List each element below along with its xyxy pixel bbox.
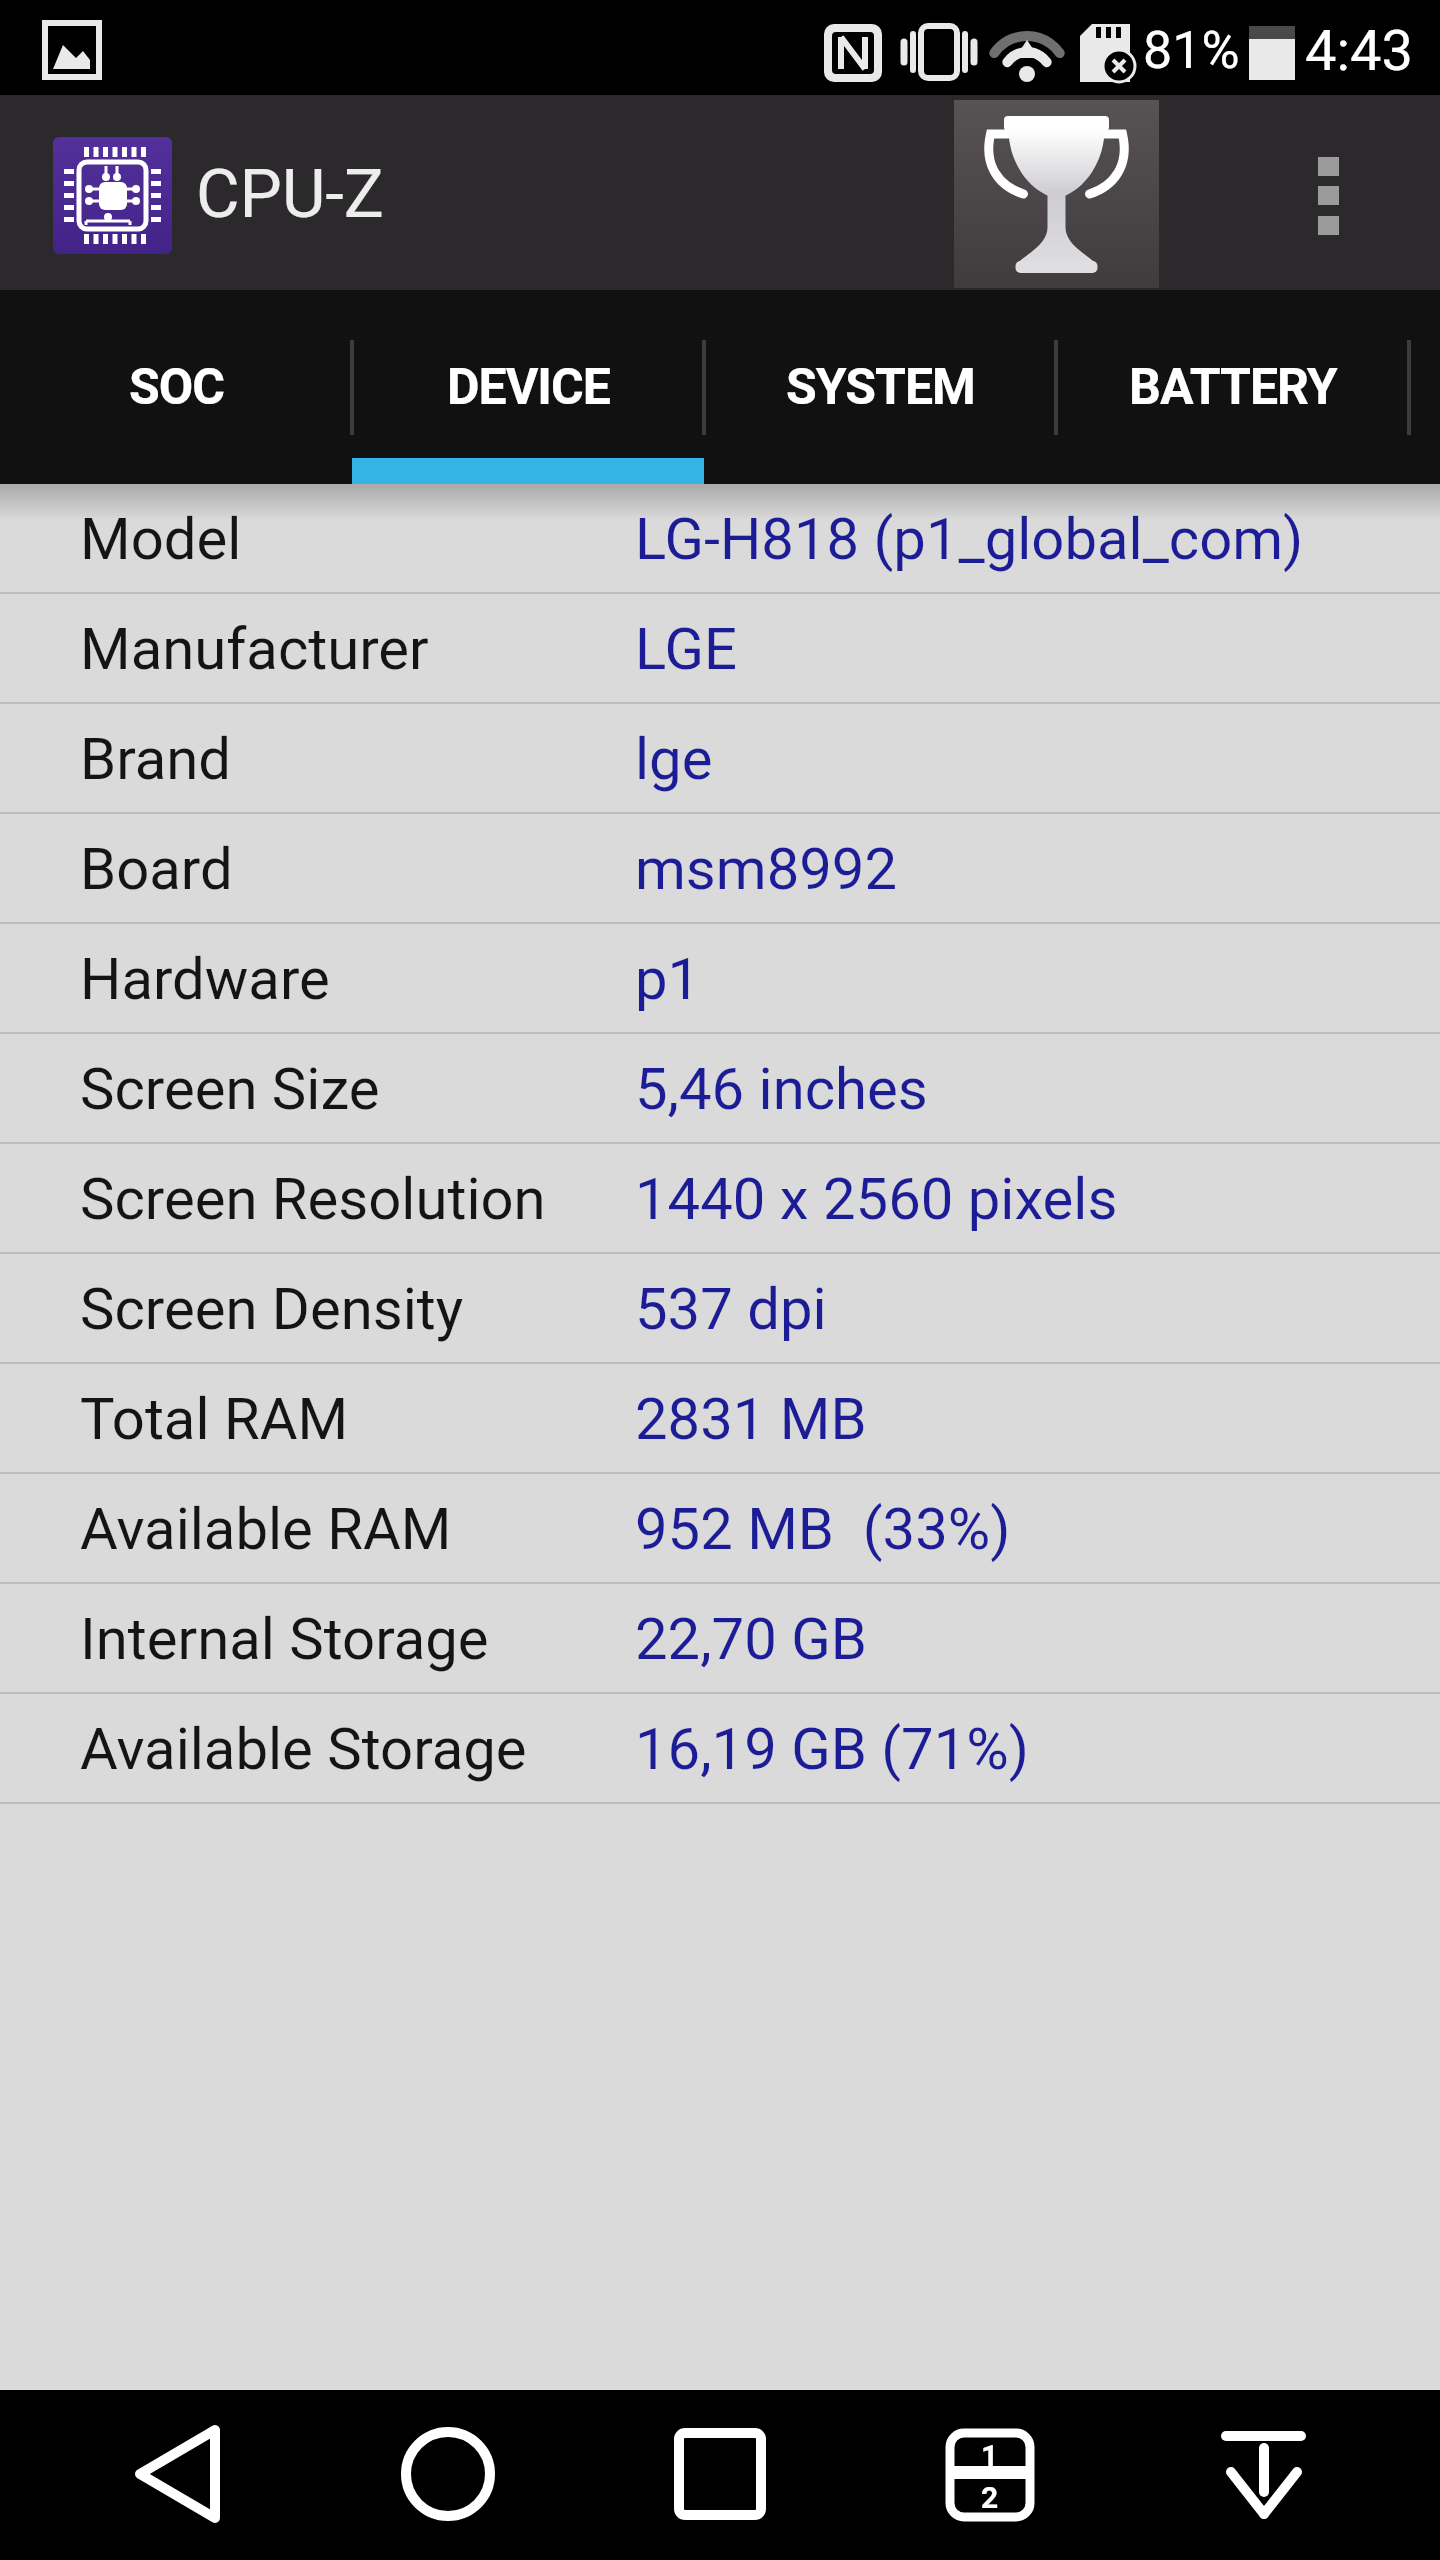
staticText: 22,70 GB (635, 1605, 867, 1673)
staticText: 2 (981, 2480, 999, 2515)
button[interactable]: SYSTEM (704, 290, 1056, 484)
button[interactable] (864, 2390, 1152, 2560)
staticText: 5,46 inches (635, 1055, 928, 1123)
staticText: CPU-Z (196, 155, 384, 234)
button[interactable] (0, 2390, 288, 2560)
button[interactable]: Total RAM (0, 1364, 1440, 1474)
button[interactable]: Available Storage (0, 1694, 1440, 1804)
staticText: SYSTEM (786, 358, 975, 417)
staticText: LG-H818 (p1_global_com) (635, 505, 1304, 573)
staticText: Hardware (80, 945, 330, 1013)
button[interactable] (1280, 125, 1380, 265)
button[interactable]: Internal Storage (0, 1584, 1440, 1694)
staticText: LGE (635, 615, 737, 683)
button[interactable]: Manufacturer (0, 594, 1440, 704)
staticText: Screen Density (80, 1275, 464, 1343)
staticText: Internal Storage (80, 1605, 489, 1673)
staticText: Available RAM (80, 1495, 452, 1563)
button[interactable]: Model (0, 484, 1440, 594)
staticText: msm8992 (635, 835, 898, 903)
staticText: Brand (80, 725, 231, 793)
staticText: 4:43 (1305, 18, 1413, 84)
staticText: 81% (1143, 20, 1240, 81)
staticText: p1 (635, 945, 701, 1013)
button[interactable]: Screen Density (0, 1254, 1440, 1364)
staticText: BATTERY (1129, 358, 1337, 417)
staticText: 16,19 GB (71%) (635, 1715, 1029, 1783)
button[interactable]: Screen Size (0, 1034, 1440, 1144)
staticText: lge (635, 725, 713, 793)
button[interactable] (1152, 2390, 1440, 2560)
button[interactable]: Brand (0, 704, 1440, 814)
staticText: Board (80, 835, 233, 903)
staticText: 2831 MB (635, 1385, 867, 1453)
staticText: Available Storage (80, 1715, 527, 1783)
button[interactable]: Board (0, 814, 1440, 924)
staticText: Screen Resolution (80, 1165, 546, 1233)
button[interactable]: Hardware (0, 924, 1440, 1034)
staticText: 1440 x 2560 pixels (635, 1165, 1118, 1233)
staticText: DEVICE (447, 358, 610, 417)
staticText: SOC (129, 358, 224, 417)
staticText: Screen Size (80, 1055, 380, 1123)
button[interactable] (576, 2390, 864, 2560)
button[interactable] (954, 100, 1159, 288)
button[interactable]: Available RAM (0, 1474, 1440, 1584)
button[interactable]: Screen Resolution (0, 1144, 1440, 1254)
staticText: 952 MB (33%) (635, 1495, 1011, 1563)
button[interactable]: DEVICE (352, 290, 704, 484)
staticText: Model (80, 505, 242, 573)
button[interactable]: BATTERY (1056, 290, 1409, 484)
staticText: Manufacturer (80, 615, 429, 683)
staticText: 1 (981, 2438, 999, 2473)
staticText: Total RAM (80, 1385, 349, 1453)
staticText: 537 dpi (635, 1275, 827, 1343)
button[interactable]: SOC (0, 290, 352, 484)
button[interactable] (288, 2390, 576, 2560)
